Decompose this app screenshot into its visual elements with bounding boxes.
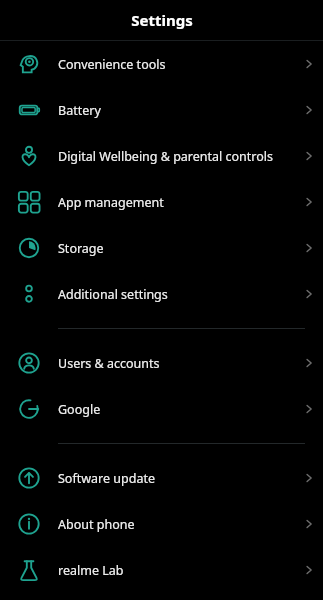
button[interactable]: Users & accounts (0, 340, 323, 386)
staticText: About phone (58, 516, 295, 533)
button[interactable]: Convenience tools (0, 41, 323, 87)
button[interactable]: Battery (0, 87, 323, 133)
staticText: Google (58, 401, 295, 418)
button[interactable]: Google (0, 386, 323, 432)
button[interactable]: App management (0, 179, 323, 225)
staticText: Convenience tools (58, 56, 295, 73)
button[interactable]: About phone (0, 501, 323, 547)
button[interactable]: Storage (0, 225, 323, 271)
button[interactable]: Digital Wellbeing & parental controls (0, 133, 323, 179)
staticText: Additional settings (58, 286, 295, 303)
staticText: Battery (58, 102, 295, 119)
staticText: App management (58, 194, 295, 211)
staticText: Settings (131, 10, 193, 30)
staticText: Users & accounts (58, 355, 295, 372)
button[interactable]: Additional settings (0, 271, 323, 317)
staticText: realme Lab (58, 562, 295, 579)
button[interactable]: Software update (0, 455, 323, 501)
staticText: Software update (58, 470, 295, 487)
button[interactable]: realme Lab (0, 547, 323, 593)
staticText: Digital Wellbeing & parental controls (58, 148, 295, 165)
staticText: Storage (58, 240, 295, 257)
